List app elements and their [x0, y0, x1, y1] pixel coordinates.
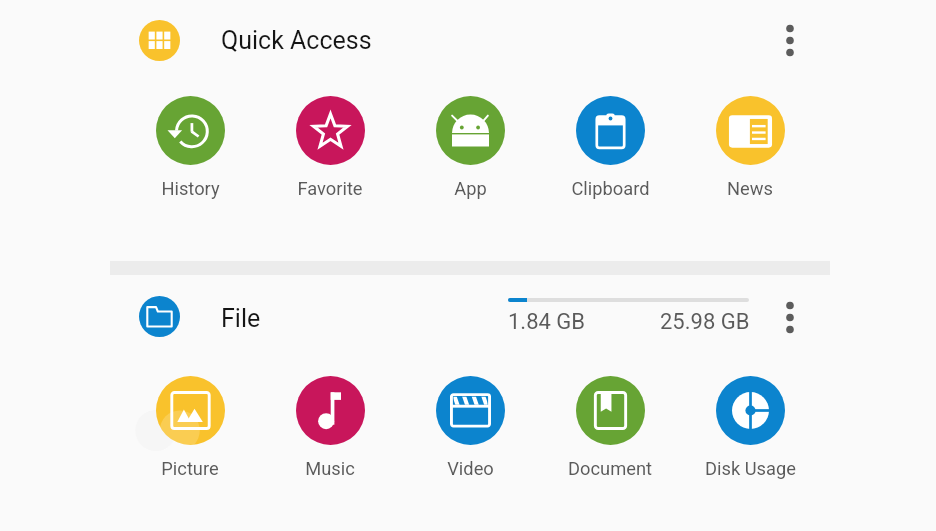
button[interactable]: Clipboard	[552, 96, 668, 199]
button[interactable]: App	[412, 96, 528, 199]
staticText: Picture	[161, 458, 219, 479]
staticText: 1.84 GB	[508, 309, 586, 335]
staticText: Document	[568, 458, 652, 479]
staticText: App	[454, 178, 487, 199]
staticText: History	[161, 178, 220, 199]
button[interactable]: Quick Access	[139, 20, 180, 61]
staticText: Quick Access	[221, 26, 372, 55]
button[interactable]: Document	[552, 376, 668, 479]
button[interactable]: Disk Usage	[692, 376, 808, 479]
staticText: Video	[447, 458, 494, 479]
staticText: Clipboard	[571, 178, 650, 199]
button[interactable]: Video	[412, 376, 528, 479]
button[interactable]: News	[692, 96, 808, 199]
button[interactable]: History	[132, 96, 248, 199]
button[interactable]: More options for File	[772, 297, 808, 338]
button[interactable]: Music	[272, 376, 388, 479]
staticText: 25.98 GB	[660, 309, 750, 335]
staticText: Favorite	[297, 178, 363, 199]
button[interactable]: More options for Quick Access	[772, 20, 808, 61]
button[interactable]: Favorite	[272, 96, 388, 199]
button[interactable]: File	[139, 296, 180, 337]
staticText: Disk Usage	[705, 458, 796, 479]
staticText: File	[221, 304, 261, 333]
staticText: Music	[305, 458, 355, 479]
button[interactable]: Picture	[132, 376, 248, 479]
staticText: News	[727, 178, 773, 199]
